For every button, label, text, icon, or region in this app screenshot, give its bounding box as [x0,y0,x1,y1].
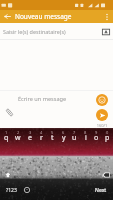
staticText: Nouveau message [15,12,72,21]
staticText: 1 [5,130,8,135]
staticText: 6 [62,130,65,135]
button[interactable]: Attach file [2,105,16,119]
staticText: r [40,133,43,143]
button[interactable]: 7 [69,129,80,144]
staticText: p [105,133,110,143]
staticText: t [51,133,54,143]
staticText: y [62,133,66,143]
staticText: 2 [17,130,20,135]
button[interactable]: z [15,167,26,182]
button[interactable]: Insert emoji [96,94,108,106]
staticText: b [66,170,70,179]
button[interactable]: 4 [36,129,47,144]
button[interactable]: Shift [0,167,15,182]
staticText: 160/1 [94,123,110,128]
staticText: d [33,155,37,164]
staticText: 9 [95,130,98,135]
staticText: x [30,170,34,179]
staticText: Écrire un message [18,95,67,103]
staticText: h [67,155,72,164]
button[interactable]: a [5,152,17,167]
button[interactable]: k [86,152,97,167]
staticText: c [42,170,46,179]
staticText: j [80,155,82,164]
button[interactable]: Backspace [98,167,113,182]
staticText: 0 [106,130,109,135]
button[interactable]: 3 [24,129,36,144]
button[interactable]: v [50,167,62,182]
staticText: e [28,133,32,143]
button[interactable]: d [29,152,41,167]
button[interactable]: j [75,152,86,167]
button[interactable]: Next [89,180,113,200]
staticText: Saisir le(s) destinataire(s) [3,28,66,35]
staticText: 3 [29,130,32,135]
staticText: u [72,133,77,143]
button[interactable]: Back [1,10,14,23]
staticText: s [21,155,25,164]
staticText: n [78,170,83,179]
button[interactable]: s [17,152,29,167]
button[interactable]: 9 [91,129,102,144]
staticText: z [19,170,23,179]
staticText: ?123 [6,187,17,194]
staticText: k [90,155,94,164]
button[interactable]: Space [31,180,89,200]
staticText: o [94,133,99,143]
button[interactable]: 2 [12,129,24,144]
button[interactable]: n [74,167,86,182]
button[interactable]: 6 [58,129,69,144]
staticText: v [54,170,58,179]
button[interactable]: g [53,152,64,167]
staticText: m [89,170,96,179]
staticText: a [9,155,13,164]
button[interactable]: b [62,167,74,182]
button[interactable]: c [38,167,50,182]
staticText: l [102,155,104,164]
staticText: 8 [84,130,87,135]
button[interactable]: l [97,152,108,167]
staticText: 7 [73,130,76,135]
staticText: 4 [40,130,43,135]
staticText: f [46,155,49,164]
button[interactable]: 0 [102,129,113,144]
button[interactable]: More options [100,10,113,23]
button[interactable]: Emoji keyboard [22,180,31,200]
staticText: 5 [51,130,54,135]
button[interactable]: 1 [0,129,12,144]
button[interactable]: x [26,167,38,182]
staticText: Next [95,187,107,194]
button[interactable]: ?123 [0,180,22,200]
staticText: g [57,155,61,164]
staticText: q [4,133,9,143]
staticText: i [85,133,87,143]
staticText: w [15,133,21,143]
button[interactable]: Send [96,109,108,121]
button[interactable]: h [64,152,75,167]
button[interactable]: f [41,152,53,167]
button[interactable]: m [86,167,98,182]
button[interactable]: 5 [47,129,58,144]
button[interactable]: 8 [80,129,91,144]
button[interactable]: Choose contact [98,24,113,39]
